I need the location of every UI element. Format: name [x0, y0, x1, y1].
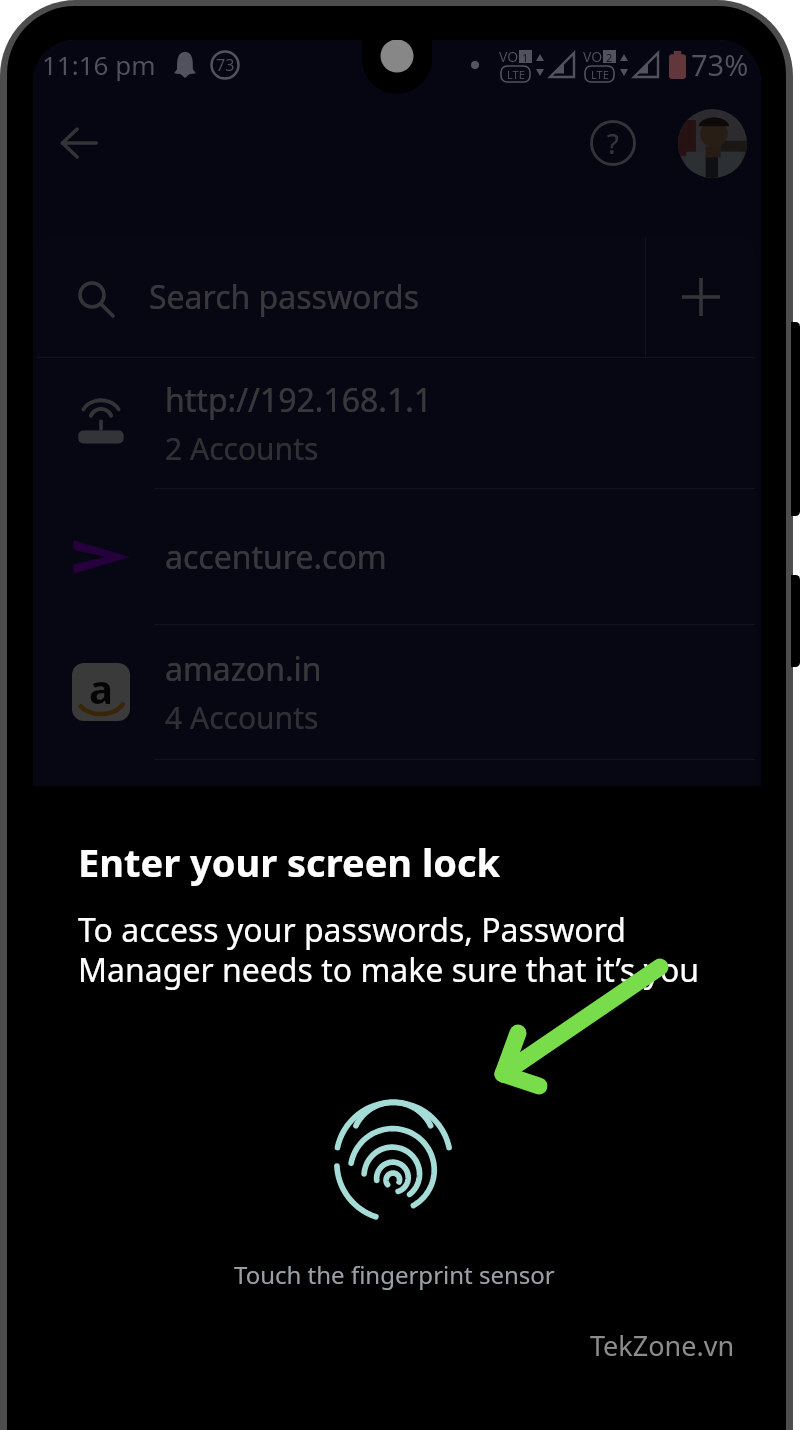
staticText: 2 Accounts — [165, 428, 319, 469]
staticText: TekZone.vn — [590, 1327, 735, 1364]
staticText: VO — [583, 47, 603, 66]
button[interactable]: Back — [50, 114, 108, 172]
staticText: a — [89, 663, 113, 715]
staticText: Search passwords — [149, 275, 419, 319]
staticText: VO — [499, 47, 519, 66]
staticText: 2 — [606, 50, 613, 63]
staticText: 73 — [216, 54, 235, 76]
button[interactable]: a — [37, 625, 755, 760]
staticText: 73% — [691, 45, 749, 84]
other: Fingerprint — [335, 1098, 459, 1222]
staticText: 11:16 pm — [42, 47, 156, 82]
staticText: amazon.in — [165, 647, 322, 691]
staticText: LTE — [507, 67, 525, 82]
staticText: 4 Accounts — [165, 697, 319, 738]
staticText: LTE — [591, 67, 609, 82]
button[interactable]: Account — [678, 109, 747, 178]
button[interactable]: Help — [584, 114, 642, 172]
button[interactable]: http://192.168.1.1 — [37, 358, 755, 489]
button[interactable]: Search passwords — [37, 237, 645, 357]
staticText: Touch the fingerprint sensor — [234, 1258, 555, 1291]
staticText: http://192.168.1.1 — [165, 378, 433, 422]
button[interactable]: accenture.com — [37, 489, 755, 625]
button[interactable]: Add password — [646, 237, 755, 357]
staticText: To access your passwords, Password Manag… — [78, 908, 700, 992]
staticText: ? — [607, 125, 619, 162]
staticText: Enter your screen lock — [78, 836, 501, 888]
staticText: accenture.com — [165, 535, 387, 579]
staticText: 1 — [522, 50, 529, 63]
